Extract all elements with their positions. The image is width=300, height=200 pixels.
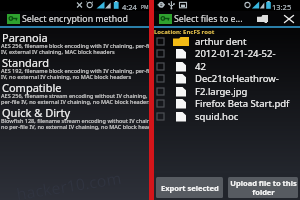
staticText: F2.large.jpg bbox=[195, 85, 248, 98]
button[interactable]: Dec21toHeathrow- bbox=[154, 72, 300, 85]
button[interactable]: Standard bbox=[0, 54, 149, 79]
staticText: 42 bbox=[195, 60, 206, 73]
button[interactable]: Close bbox=[277, 11, 300, 26]
staticText: IV, no external IV chaining, no MAC bloc… bbox=[1, 73, 132, 80]
button[interactable]: Firefox Beta Start.pdf bbox=[154, 97, 300, 110]
staticText: Dec21toHeathrow- bbox=[195, 72, 279, 85]
staticText: AES 256, filename block encoding with IV… bbox=[1, 42, 150, 49]
staticText: Upload file to this folder bbox=[230, 178, 297, 197]
button[interactable]: 2012-01-21-24-52- bbox=[154, 47, 300, 60]
button[interactable]: 42 bbox=[154, 60, 300, 73]
button[interactable]: Upload file to this folder bbox=[228, 177, 298, 198]
button[interactable]: New folder bbox=[250, 11, 274, 26]
staticText: no per-file IV, no external IV chaining,… bbox=[1, 123, 150, 130]
button[interactable]: arthur dent bbox=[154, 35, 300, 48]
staticText: Export selected bbox=[161, 183, 219, 193]
staticText: AES 192, filename block encoding with IV… bbox=[1, 67, 150, 74]
staticText: Standard bbox=[2, 55, 50, 70]
staticText: Compatible bbox=[2, 80, 62, 95]
staticText: squid.hoc bbox=[195, 110, 239, 123]
staticText: Select files to e... bbox=[174, 13, 243, 25]
button[interactable]: F2.large.jpg bbox=[154, 85, 300, 98]
staticText: 13:25 bbox=[272, 2, 292, 12]
staticText: hacker10.com bbox=[15, 167, 123, 200]
button[interactable]: Quick & Dirty bbox=[0, 104, 149, 129]
staticText: Blowfish 128, filename stream encoding w… bbox=[1, 117, 150, 124]
button[interactable]: Compatible bbox=[0, 79, 149, 104]
staticText: PM bbox=[141, 4, 149, 11]
staticText: Select encryption method bbox=[22, 13, 128, 25]
button[interactable]: Export selected bbox=[156, 177, 223, 198]
staticText: AES 256, filename stream encoding withou… bbox=[1, 92, 150, 99]
staticText: 4:24 bbox=[122, 2, 137, 12]
staticText: Firefox Beta Start.pdf bbox=[195, 97, 290, 110]
staticText: Location: EncFS root bbox=[154, 28, 215, 35]
button[interactable]: Paranoia bbox=[0, 29, 149, 54]
staticText: IV, external IV chaining, MAC block head… bbox=[1, 48, 115, 55]
staticText: per-file IV, no external IV chaining, no… bbox=[1, 98, 150, 105]
staticText: Quick & Dirty bbox=[2, 105, 71, 120]
staticText: Paranoia bbox=[2, 30, 48, 45]
button[interactable]: squid.hoc bbox=[154, 110, 300, 123]
staticText: 2012-01-21-24-52- bbox=[195, 47, 276, 60]
staticText: arthur dent bbox=[195, 35, 247, 48]
